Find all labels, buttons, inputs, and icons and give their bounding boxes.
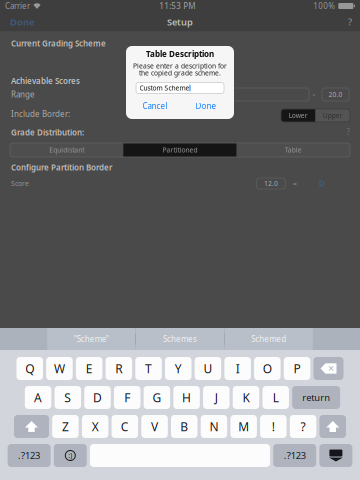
staticText: G	[152, 389, 161, 405]
button[interactable]: ?	[290, 415, 316, 438]
staticText: Equidistant	[49, 146, 84, 154]
staticText: "Scheme"	[74, 334, 109, 344]
button[interactable]: Emoji	[54, 444, 87, 467]
button[interactable]: V	[141, 415, 168, 438]
staticText: N	[209, 418, 218, 434]
button[interactable]: F	[114, 386, 140, 409]
staticText: Cancel	[142, 101, 167, 111]
staticText: T	[145, 360, 152, 376]
staticText: Please enter a description for	[133, 62, 227, 70]
button[interactable]: Help	[334, 13, 360, 31]
button[interactable]: Cancel	[130, 98, 180, 113]
staticText: W	[54, 360, 65, 376]
button[interactable]: Schemes	[136, 328, 224, 350]
staticText: Schemes	[163, 334, 197, 344]
button[interactable]: Done	[0, 13, 44, 31]
button[interactable]: I	[224, 357, 251, 380]
button[interactable]: Table	[237, 143, 350, 157]
staticText: A	[34, 389, 42, 405]
staticText: ?	[348, 16, 352, 28]
staticText: .?123	[18, 449, 40, 462]
staticText: the copied grade scheme.	[139, 69, 221, 77]
staticText: C	[121, 418, 129, 434]
button[interactable]: K	[233, 386, 259, 409]
button[interactable]: Lower	[281, 109, 315, 122]
staticText: Lower	[289, 111, 308, 120]
staticText: 12.0	[264, 179, 278, 188]
button[interactable]: S	[55, 386, 81, 409]
button[interactable]: W	[46, 357, 73, 380]
staticText: ?	[300, 418, 305, 434]
button[interactable]: Shift	[319, 415, 346, 438]
staticText: Y	[175, 360, 182, 376]
staticText: Current Grading Scheme	[11, 38, 106, 49]
button[interactable]: Hide Keyboard	[319, 444, 352, 467]
button[interactable]: X	[82, 415, 108, 438]
button[interactable]: L	[262, 386, 289, 409]
button[interactable]: M	[230, 415, 257, 438]
staticText: .?123	[284, 449, 306, 462]
button[interactable]: Delete	[313, 357, 343, 380]
staticText: U	[203, 360, 212, 376]
staticText: Upper	[323, 111, 343, 120]
button[interactable]: Upper	[315, 109, 350, 122]
button[interactable]: A	[25, 386, 51, 409]
staticText: R	[115, 360, 122, 376]
button[interactable]: C	[112, 415, 138, 438]
staticText: Setup	[167, 16, 193, 28]
staticText: Grade Distribution:	[11, 127, 84, 138]
button[interactable]: O	[254, 357, 281, 380]
staticText: ×	[328, 361, 334, 375]
staticText: F	[124, 389, 130, 405]
staticText: J	[215, 389, 218, 405]
button[interactable]: Schemed	[225, 328, 313, 350]
button[interactable]: J	[203, 386, 229, 409]
staticText: -	[312, 89, 315, 100]
button[interactable]: Done	[181, 98, 231, 113]
staticText: E	[86, 360, 93, 376]
button[interactable]: Q	[16, 357, 43, 380]
button[interactable]: D	[84, 386, 111, 409]
button[interactable]: return	[292, 386, 340, 409]
staticText: 100%	[313, 1, 335, 11]
button[interactable]: .?123	[8, 444, 51, 467]
button[interactable]: Y	[165, 357, 191, 380]
staticText: :)	[68, 451, 72, 460]
staticText: !	[272, 418, 275, 434]
staticText: Carrier	[5, 1, 30, 11]
button[interactable]: Partitioned	[123, 143, 237, 157]
button[interactable]: B	[171, 415, 197, 438]
staticText: =	[293, 179, 297, 188]
staticText: D	[93, 389, 102, 405]
button[interactable]: R	[106, 357, 132, 380]
button[interactable]: "Scheme"	[47, 328, 135, 350]
button[interactable]: H	[173, 386, 200, 409]
staticText: K	[242, 389, 249, 405]
button[interactable]: .?123	[273, 444, 316, 467]
button[interactable]: N	[201, 415, 227, 438]
staticText: Table	[285, 146, 302, 154]
button[interactable]: P	[284, 357, 310, 380]
staticText: B	[180, 418, 188, 434]
staticText: 20.0	[328, 90, 342, 99]
staticText: O	[263, 360, 272, 376]
button[interactable]: Shift	[14, 415, 49, 438]
button[interactable]: !	[260, 415, 287, 438]
button[interactable]: Equidistant	[10, 143, 123, 157]
staticText: I	[236, 360, 240, 376]
button[interactable]: U	[195, 357, 221, 380]
staticText: Custom Scheme	[139, 84, 189, 92]
staticText: Z	[62, 418, 69, 434]
button[interactable]: T	[135, 357, 162, 380]
staticText: Score	[11, 179, 29, 188]
staticText: D	[319, 178, 325, 189]
button[interactable]: Z	[52, 415, 79, 438]
button[interactable]: E	[76, 357, 102, 380]
staticText: P	[293, 360, 300, 376]
staticText: X	[92, 418, 99, 434]
staticText: H	[182, 389, 191, 405]
button[interactable]: G	[144, 386, 170, 409]
staticText: Done	[10, 16, 34, 28]
staticText: Configure Partition Border	[11, 162, 112, 173]
